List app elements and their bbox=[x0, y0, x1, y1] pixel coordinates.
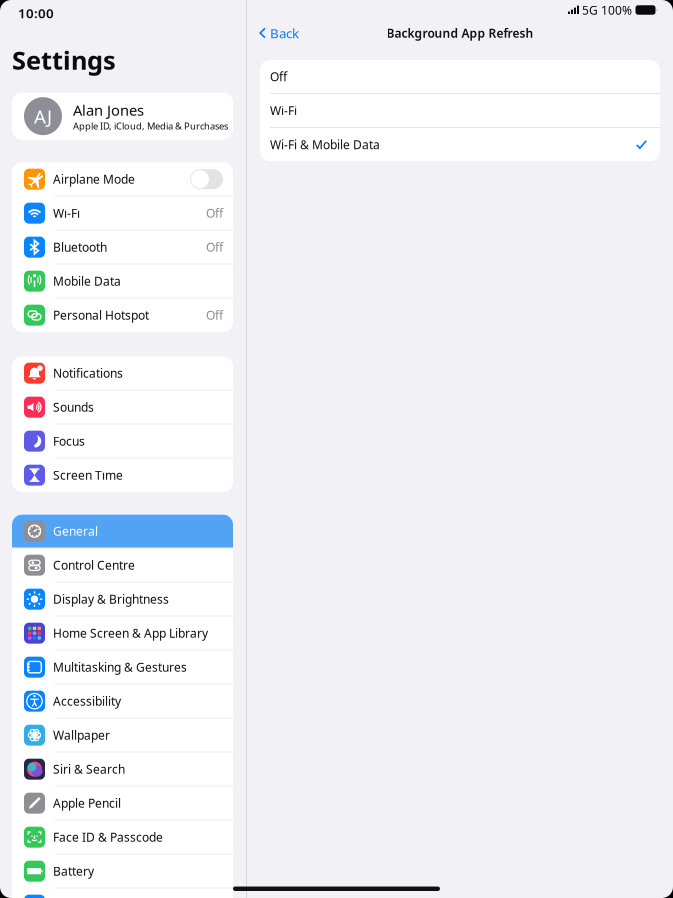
staticText: Face ID & Passcode bbox=[53, 829, 163, 845]
staticText: Accessibility bbox=[53, 693, 121, 709]
button[interactable]: Battery bbox=[12, 855, 233, 888]
staticText: Bluetooth bbox=[53, 239, 107, 255]
button[interactable]: Face ID & Passcode bbox=[12, 821, 233, 854]
staticText: Screen Time bbox=[53, 467, 123, 483]
button[interactable]: Notifications bbox=[12, 357, 233, 390]
button[interactable]: Multitasking & Gestures bbox=[12, 651, 233, 684]
staticText: Off bbox=[206, 239, 223, 255]
staticText: Sounds bbox=[53, 399, 94, 415]
staticText: 5G 100% bbox=[579, 2, 635, 18]
staticText: Off bbox=[270, 68, 287, 84]
staticText: Background App Refresh bbox=[386, 25, 533, 41]
button[interactable]: Accessibility bbox=[12, 685, 233, 718]
staticText: Back bbox=[270, 24, 299, 42]
button[interactable]: Bluetooth bbox=[12, 231, 233, 264]
button[interactable]: Wi-Fi & Mobile Data bbox=[260, 128, 660, 161]
staticText: Battery bbox=[53, 863, 94, 879]
staticText: Siri & Search bbox=[53, 761, 125, 777]
button[interactable]: Airplane Mode bbox=[12, 163, 233, 196]
button[interactable]: Focus bbox=[12, 425, 233, 458]
staticText: Display & Brightness bbox=[53, 591, 169, 607]
button[interactable]: Siri & Search bbox=[12, 753, 233, 786]
button[interactable]: Off bbox=[260, 60, 660, 93]
button[interactable]: Wi-Fi bbox=[260, 94, 660, 127]
button[interactable]: Screen Time bbox=[12, 459, 233, 492]
staticText: Control Centre bbox=[53, 557, 135, 573]
button[interactable]: Back bbox=[247, 20, 299, 46]
button[interactable]: General bbox=[12, 515, 233, 548]
button[interactable]: Apple Pencil bbox=[12, 787, 233, 820]
staticText: Wi-Fi bbox=[270, 102, 297, 118]
button[interactable]: Sounds bbox=[12, 391, 233, 424]
button[interactable]: Control Centre bbox=[12, 549, 233, 582]
staticText: Settings bbox=[12, 43, 116, 77]
button[interactable]: Display & Brightness bbox=[12, 583, 233, 616]
staticText: Mobile Data bbox=[53, 273, 121, 289]
staticText: Focus bbox=[53, 433, 85, 449]
staticText: Multitasking & Gestures bbox=[53, 659, 187, 675]
staticText: Home Screen & App Library bbox=[53, 625, 208, 641]
button[interactable]: Privacy & Security bbox=[12, 889, 233, 898]
staticText: Wallpaper bbox=[53, 727, 110, 743]
staticText: Apple Pencil bbox=[53, 795, 121, 811]
staticText: Wi-Fi bbox=[53, 205, 80, 221]
staticText: AJ bbox=[34, 104, 52, 128]
staticText: Notifications bbox=[53, 365, 123, 381]
staticText: Personal Hotspot bbox=[53, 307, 149, 323]
staticText: Wi-Fi & Mobile Data bbox=[270, 136, 380, 152]
button[interactable]: Mobile Data bbox=[12, 265, 233, 298]
button[interactable]: Wi-Fi bbox=[12, 197, 233, 230]
staticText: Airplane Mode bbox=[53, 171, 135, 187]
staticText: Alan Jones bbox=[73, 100, 144, 120]
staticText: 10:00 bbox=[18, 4, 54, 22]
staticText: Apple ID, iCloud, Media & Purchases bbox=[73, 120, 228, 132]
staticText: Off bbox=[206, 205, 223, 221]
staticText: General bbox=[53, 523, 98, 539]
button[interactable]: Home Screen & App Library bbox=[12, 617, 233, 650]
button[interactable]: Personal Hotspot bbox=[12, 299, 233, 332]
staticText: Off bbox=[206, 307, 223, 323]
button[interactable]: AJ bbox=[12, 93, 233, 140]
button[interactable]: Wallpaper bbox=[12, 719, 233, 752]
